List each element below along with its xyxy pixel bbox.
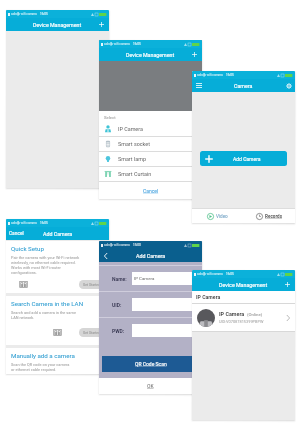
staticText: 16:05: [226, 73, 234, 77]
staticText: 16:05: [226, 272, 234, 276]
button[interactable]: IP Camera: [192, 304, 295, 331]
staticText: Manually add a camera: [11, 352, 75, 359]
staticText: UID:V07087815399PBPW: [219, 319, 264, 324]
staticText: OK: [147, 383, 154, 389]
button[interactable]: Add device: [94, 18, 109, 31]
staticText: ashdjk wifi camera: [197, 73, 223, 77]
button[interactable]: Details: [284, 314, 292, 322]
staticText: Search Camera in the LAN: [11, 300, 84, 307]
staticText: Smart socket: [118, 141, 150, 147]
button[interactable]: IP Camera: [99, 122, 202, 136]
button[interactable]: OK: [99, 378, 202, 394]
button[interactable]: Records: [243, 209, 295, 223]
staticText: IP Camera: [219, 311, 245, 317]
staticText: Smart lamp: [118, 156, 146, 162]
staticText: ashdjk wifi camera: [104, 42, 130, 46]
staticText: ashdjk wifi camera: [104, 243, 130, 247]
staticText: (Online): [247, 312, 263, 317]
staticText: IP Camera: [118, 126, 143, 132]
staticText: Scan the QR code on your camera or ether…: [11, 362, 70, 372]
button[interactable]: Menu: [192, 79, 205, 92]
staticText: Cancel: [9, 231, 24, 237]
button[interactable]: Settings: [282, 79, 295, 92]
staticText: UID:: [112, 302, 122, 308]
button[interactable]: Get Started: [79, 328, 105, 337]
staticText: Name:: [112, 276, 127, 282]
staticText: Cancel: [143, 188, 159, 194]
staticText: 15:00: [133, 243, 141, 247]
staticText: ashdjk wifi camera: [11, 221, 37, 225]
button[interactable]: Smart Curtain: [99, 167, 202, 181]
button[interactable]: Smart socket: [99, 137, 202, 151]
staticText: 16:05: [40, 12, 48, 16]
staticText: Device Management: [126, 52, 175, 58]
staticText: 16:05: [133, 42, 141, 46]
staticText: Get Started: [83, 283, 101, 287]
staticText: Search and add a camera in the same LAN …: [11, 310, 76, 320]
button[interactable]: Get Started: [79, 280, 105, 289]
button[interactable]: Add Camera: [200, 151, 287, 166]
button[interactable]: Cancel: [137, 186, 165, 196]
button[interactable]: Smart lamp: [99, 152, 202, 166]
button[interactable]: Add device: [187, 48, 202, 61]
staticText: Records: [265, 214, 282, 219]
staticText: Smart Curtain: [118, 171, 152, 177]
staticText: IP Camera: [196, 294, 221, 300]
staticText: Add Camera: [43, 231, 73, 237]
staticText: Add Camera: [136, 253, 166, 259]
staticText: Video: [216, 214, 228, 219]
button[interactable]: Video: [192, 209, 243, 223]
staticText: Select: [104, 115, 116, 120]
button[interactable]: Add device: [280, 278, 295, 291]
staticText: Camera: [234, 83, 253, 89]
button[interactable]: QR Code Scan: [102, 356, 199, 372]
staticText: Device Management: [219, 282, 268, 288]
staticText: Device Management: [33, 22, 82, 28]
staticText: Pair the camera with your Wi-Fi network …: [11, 255, 80, 275]
staticText: 16:05: [40, 221, 48, 225]
staticText: QR Code Scan: [135, 361, 167, 367]
staticText: Quick Setup: [11, 245, 44, 252]
button[interactable]: Back: [99, 249, 112, 262]
staticText: PWD:: [112, 328, 125, 334]
staticText: IP Camera: [134, 276, 155, 281]
staticText: Add Camera: [233, 156, 261, 162]
button[interactable]: Cancel: [6, 227, 27, 240]
staticText: ashdjk wifi camera: [197, 272, 223, 276]
staticText: Get Started: [83, 331, 101, 335]
staticText: ashdjk wifi camera: [11, 12, 37, 16]
